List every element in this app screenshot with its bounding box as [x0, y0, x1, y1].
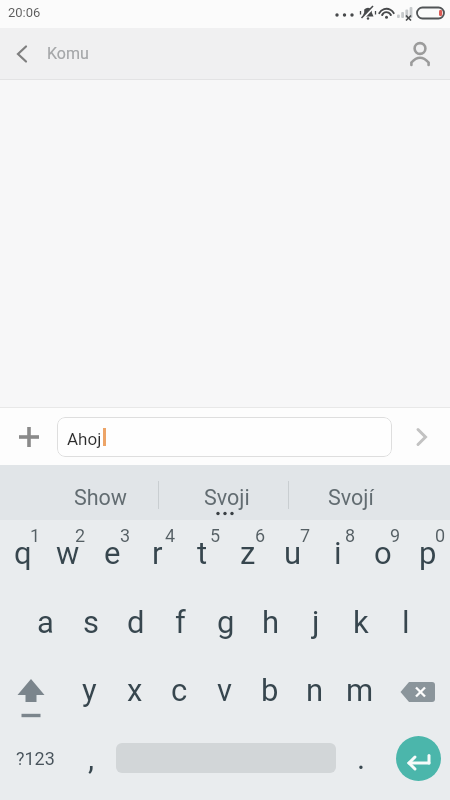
staticText: 5 [210, 525, 221, 546]
button[interactable] [0, 28, 44, 79]
staticText: z [240, 535, 256, 571]
button[interactable]: v [202, 658, 247, 726]
button[interactable]: d [113, 590, 158, 658]
button[interactable]: c [157, 658, 202, 726]
staticText: 9 [390, 525, 401, 546]
button[interactable]: w [45, 520, 90, 590]
button[interactable]: f [158, 590, 203, 658]
button[interactable]: o [360, 520, 405, 590]
staticText: o [374, 535, 392, 571]
button[interactable] [0, 408, 57, 465]
staticText: f [175, 604, 186, 640]
staticText: 1 [30, 525, 41, 546]
button[interactable]: n [292, 658, 337, 726]
button[interactable]: u [270, 520, 315, 590]
staticText: 8 [345, 525, 356, 546]
staticText: l [402, 604, 410, 640]
staticText: h [262, 604, 280, 640]
staticText: d [127, 604, 145, 640]
staticText: p [419, 535, 437, 571]
button[interactable]: l [383, 590, 428, 658]
staticText: . [357, 740, 366, 776]
button[interactable]: m [337, 658, 382, 726]
button[interactable]: a [23, 590, 68, 658]
staticText: y [82, 672, 97, 708]
button[interactable]: p [405, 520, 450, 590]
staticText: g [217, 604, 235, 640]
staticText: 2 [75, 525, 86, 546]
button[interactable]: ?123 [0, 726, 66, 790]
staticText: b [261, 672, 279, 708]
button[interactable]: x [112, 658, 157, 726]
button[interactable] [0, 658, 61, 726]
button[interactable]: e [90, 520, 135, 590]
staticText: u [284, 535, 302, 571]
staticText: 20:06 [8, 5, 41, 20]
button[interactable]: k [338, 590, 383, 658]
button[interactable] [386, 726, 450, 790]
button[interactable]: b [247, 658, 292, 726]
button[interactable] [386, 658, 450, 726]
staticText: k [353, 604, 369, 640]
button[interactable]: i [315, 520, 360, 590]
button[interactable]: s [68, 590, 113, 658]
button[interactable]: z [225, 520, 270, 590]
staticText: Komu [47, 44, 89, 63]
staticText: Show [74, 485, 128, 510]
staticText: c [171, 672, 188, 708]
button[interactable]: r [135, 520, 180, 590]
staticText: n [306, 672, 324, 708]
button[interactable]: q [0, 520, 45, 590]
staticText: s [83, 604, 99, 640]
button[interactable]: Svoji [159, 465, 288, 520]
button[interactable] [390, 28, 450, 79]
staticText: r [152, 535, 163, 571]
staticText: t [197, 535, 208, 571]
staticText: 3 [120, 525, 131, 546]
staticText: 4 [165, 525, 176, 546]
button[interactable]: h [248, 590, 293, 658]
button[interactable]: j [293, 590, 338, 658]
button[interactable]: t [180, 520, 225, 590]
staticText: m [346, 672, 374, 708]
staticText: a [37, 604, 54, 640]
staticText: , [88, 740, 95, 776]
staticText: Svoji [204, 485, 250, 510]
staticText: e [104, 535, 121, 571]
staticText: i [334, 535, 342, 571]
button[interactable] [116, 726, 336, 790]
staticText: 7 [300, 525, 311, 546]
button[interactable]: Show [0, 465, 158, 520]
staticText: w [56, 535, 80, 571]
button[interactable]: , [66, 726, 116, 790]
staticText: 6 [255, 525, 266, 546]
button[interactable]: Svojí [289, 465, 450, 520]
button[interactable]: y [67, 658, 112, 726]
staticText: q [14, 535, 32, 571]
button[interactable]: Ahoj [57, 417, 392, 457]
button[interactable]: . [336, 726, 386, 790]
staticText: Ahoj [67, 429, 102, 449]
staticText: 0 [435, 525, 446, 546]
staticText: x [127, 672, 143, 708]
staticText: j [312, 604, 320, 640]
staticText: ?123 [16, 748, 55, 769]
staticText: Svojí [328, 485, 374, 510]
staticText: v [217, 672, 233, 708]
button[interactable]: g [203, 590, 248, 658]
button[interactable] [392, 408, 450, 465]
